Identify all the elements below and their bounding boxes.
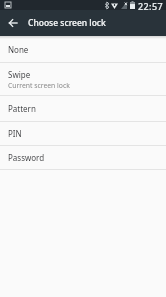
staticText: Password bbox=[8, 152, 45, 163]
staticText: Choose screen lock bbox=[28, 17, 106, 29]
button[interactable]: Swipe bbox=[0, 63, 166, 96]
button[interactable]: Pattern bbox=[0, 96, 166, 122]
staticText: None bbox=[8, 44, 29, 55]
button[interactable]: Password bbox=[0, 146, 166, 170]
staticText: Swipe bbox=[8, 69, 31, 80]
staticText: Current screen lock bbox=[8, 81, 70, 90]
staticText: PIN bbox=[8, 128, 22, 139]
button[interactable] bbox=[0, 10, 26, 36]
staticText: 22:57 bbox=[138, 0, 164, 10]
staticText: Pattern bbox=[8, 103, 36, 114]
button[interactable]: PIN bbox=[0, 122, 166, 146]
button[interactable]: None bbox=[0, 36, 166, 63]
